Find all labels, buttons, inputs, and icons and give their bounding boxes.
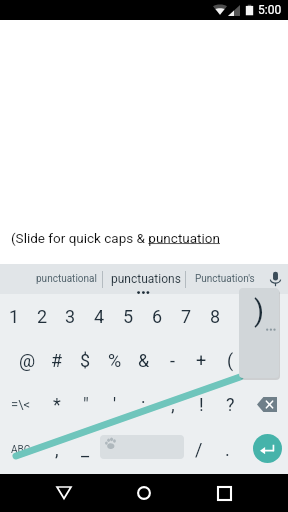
button[interactable]: , — [42, 429, 71, 474]
button[interactable]: 9 — [230, 294, 259, 339]
button[interactable]: % — [100, 339, 129, 384]
staticText: # — [51, 350, 63, 371]
button[interactable]: _ — [71, 429, 100, 474]
staticText: punctuational — [36, 273, 97, 285]
button[interactable]: 8 — [201, 294, 230, 339]
button[interactable]: 5 — [114, 294, 143, 339]
staticText: Punctuation's — [195, 273, 255, 285]
button[interactable]: @ — [13, 339, 42, 384]
staticText: ABC — [11, 444, 31, 456]
button[interactable]: ) — [245, 339, 274, 384]
button[interactable]: 1 — [0, 294, 28, 339]
staticText: ( — [227, 350, 234, 371]
button[interactable]: Home — [104, 474, 184, 512]
staticText: ! — [199, 394, 204, 415]
staticText: : — [141, 394, 146, 415]
button[interactable]: punctuational — [0, 264, 103, 294]
staticText: 4 — [94, 306, 105, 327]
button[interactable]: * — [42, 384, 71, 429]
staticText: - — [170, 350, 175, 371]
staticText: . — [225, 439, 230, 460]
staticText: =\< — [11, 397, 31, 412]
staticText: ; — [171, 394, 175, 415]
button[interactable]: # — [42, 339, 71, 384]
button[interactable]: / — [184, 429, 213, 474]
button[interactable]: Space — [100, 429, 184, 474]
staticText: 2 — [37, 306, 48, 327]
button[interactable]: & — [129, 339, 158, 384]
button[interactable]: 0 — [259, 294, 288, 339]
staticText: _ — [81, 439, 90, 460]
button[interactable]: ; — [158, 384, 187, 429]
button[interactable]: ! — [187, 384, 216, 429]
button[interactable]: Enter — [242, 429, 288, 474]
button[interactable]: Punctuation's — [186, 264, 263, 294]
button[interactable]: 7 — [172, 294, 201, 339]
button[interactable]: . — [213, 429, 242, 474]
staticText: & — [138, 350, 150, 371]
staticText: punctuations — [111, 272, 181, 286]
button[interactable]: + — [187, 339, 216, 384]
button[interactable]: 2 — [28, 294, 56, 339]
button[interactable]: ? — [216, 384, 245, 429]
button[interactable]: " — [71, 384, 100, 429]
staticText: ) — [254, 294, 265, 328]
staticText: " — [83, 394, 89, 415]
button[interactable]: 3 — [56, 294, 85, 339]
button[interactable]: ABC — [0, 429, 42, 474]
button[interactable]: Back — [24, 474, 104, 512]
staticText: * — [53, 394, 61, 415]
staticText: 5:00 — [258, 3, 282, 17]
button[interactable]: : — [129, 384, 158, 429]
staticText: 1 — [9, 306, 20, 327]
button[interactable]: ( — [216, 339, 245, 384]
button[interactable]: $ — [71, 339, 100, 384]
staticText: / — [195, 439, 203, 460]
staticText: 7 — [181, 306, 192, 327]
staticText: @ — [19, 350, 36, 371]
button[interactable]: 6 — [143, 294, 172, 339]
button[interactable]: ' — [100, 384, 129, 429]
staticText: 3 — [65, 306, 76, 327]
staticText: ? — [226, 394, 235, 415]
staticText: + — [196, 350, 207, 371]
button[interactable]: Backspace — [245, 384, 288, 429]
staticText: , — [55, 439, 59, 460]
button[interactable]: Recents — [184, 474, 264, 512]
staticText: 5 — [123, 306, 134, 327]
staticText: $ — [80, 350, 91, 371]
staticText: 8 — [210, 306, 221, 327]
staticText: % — [108, 350, 122, 371]
button[interactable]: - — [158, 339, 187, 384]
button[interactable]: =\< — [0, 384, 42, 429]
button[interactable]: punctuations — [103, 264, 186, 294]
staticText: ' — [113, 394, 117, 415]
button[interactable]: 4 — [85, 294, 114, 339]
staticText: 6 — [152, 306, 163, 327]
staticText: (Slide for quick caps & punctuation — [11, 230, 220, 246]
button[interactable]: Voice input — [263, 264, 288, 294]
